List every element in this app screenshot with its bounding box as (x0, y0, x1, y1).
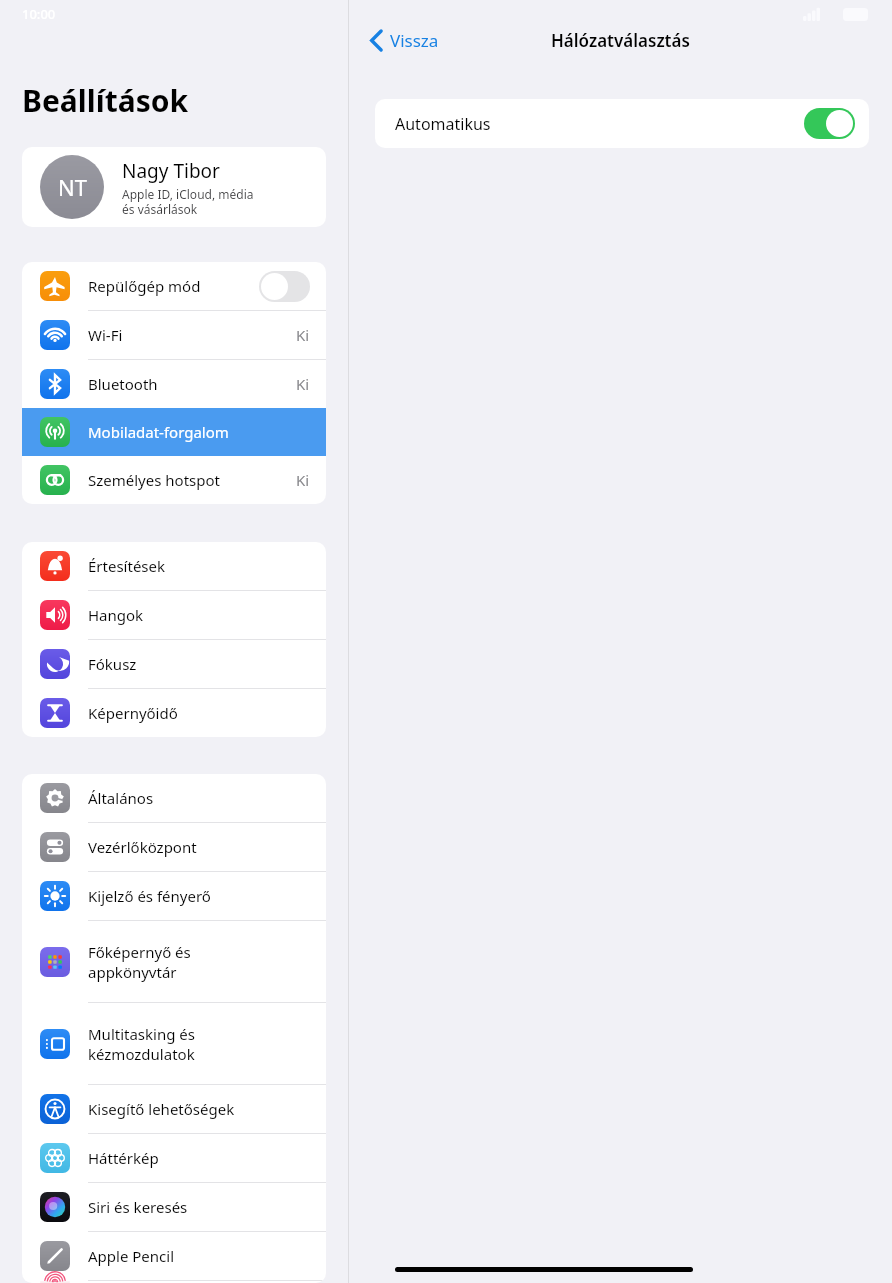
staticText: Wi-Fi (88, 325, 296, 345)
staticText: Vissza (390, 29, 439, 52)
staticText: Képernyőidő (88, 703, 310, 723)
button[interactable]: Bluetooth (22, 360, 326, 408)
button[interactable]: Touch ID és jelkód (22, 1281, 326, 1283)
button[interactable]: Vissza (363, 23, 447, 58)
staticText: Beállítások (22, 80, 189, 121)
button[interactable]: Általános (22, 774, 326, 822)
staticText: Általános (88, 788, 310, 808)
staticText: Hálózatválasztás (551, 29, 690, 52)
button[interactable]: Multitasking és kézmozdulatok (22, 1003, 326, 1084)
staticText: Ki (296, 374, 310, 394)
staticText: Kijelző és fényerő (88, 886, 310, 906)
button[interactable]: Vezérlőközpont (22, 823, 326, 871)
staticText: Siri és keresés (88, 1197, 310, 1217)
button[interactable]: Képernyőidő (22, 689, 326, 737)
button[interactable]: Kikapcsolás (804, 108, 855, 139)
staticText: Apple ID, iCloud, média és vásárlások (122, 186, 254, 217)
button[interactable]: Hangok (22, 591, 326, 639)
button[interactable]: Személyes hotspot (22, 456, 326, 504)
staticText: Főképernyő és appkönyvtár (88, 942, 310, 982)
button[interactable]: Háttérkép (22, 1134, 326, 1182)
staticText: Repülőgép mód (88, 276, 259, 296)
staticText: 10:00 (22, 5, 56, 23)
staticText: Értesítések (88, 556, 310, 576)
button[interactable]: Kijelző és fényerő (22, 872, 326, 920)
staticText: Háttérkép (88, 1148, 310, 1168)
button[interactable]: Mobiladat-forgalom (22, 408, 326, 456)
button[interactable]: Bekapcsolás (259, 271, 310, 302)
staticText: Ki (296, 325, 310, 345)
staticText: Automatikus (395, 113, 804, 135)
button[interactable]: Értesítések (22, 542, 326, 590)
button[interactable]: Főképernyő és appkönyvtár (22, 921, 326, 1002)
staticText: Multitasking és kézmozdulatok (88, 1024, 310, 1064)
button[interactable]: Apple Pencil (22, 1232, 326, 1280)
staticText: Bluetooth (88, 374, 296, 394)
button[interactable]: Siri és keresés (22, 1183, 326, 1231)
button[interactable]: Wi-Fi (22, 311, 326, 359)
staticText: Fókusz (88, 654, 310, 674)
staticText: Nagy Tibor (122, 158, 220, 184)
staticText: Személyes hotspot (88, 470, 296, 490)
staticText: Ki (296, 470, 310, 490)
button[interactable]: Repülőgép mód (22, 262, 326, 310)
button[interactable]: Kisegítő lehetőségek (22, 1085, 326, 1133)
staticText: NT (58, 172, 87, 202)
staticText: Mobiladat-forgalom (88, 422, 310, 442)
staticText: Hangok (88, 605, 310, 625)
button[interactable]: Automatikus (375, 99, 869, 148)
staticText: Apple Pencil (88, 1246, 310, 1266)
button[interactable]: Fókusz (22, 640, 326, 688)
staticText: Vezérlőközpont (88, 837, 310, 857)
staticText: Kisegítő lehetőségek (88, 1099, 310, 1119)
button[interactable]: NT (22, 147, 326, 227)
